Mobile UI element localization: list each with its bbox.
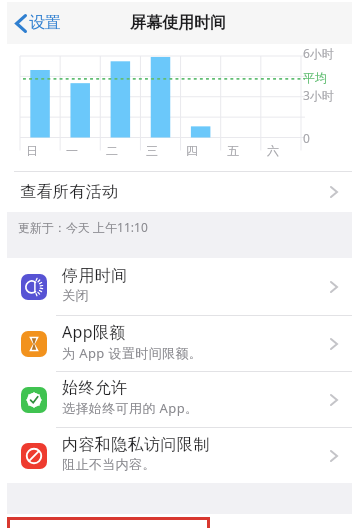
staticText: 0 bbox=[303, 130, 310, 146]
staticText: 3小时 bbox=[303, 87, 334, 103]
staticText: 一 bbox=[66, 143, 78, 158]
button[interactable]: Content Restrictions bbox=[7, 428, 352, 483]
staticText: 日 bbox=[26, 143, 38, 158]
staticText: 二 bbox=[106, 143, 118, 158]
staticText: App限额 bbox=[62, 321, 126, 343]
staticText: 查看所有活动 bbox=[20, 182, 119, 202]
button[interactable]: App Limits bbox=[7, 316, 352, 371]
button[interactable]: Downtime bbox=[7, 258, 352, 315]
other: Content Restrictions bbox=[21, 443, 47, 469]
staticText: 停用时间 bbox=[62, 266, 128, 286]
staticText: 关闭 bbox=[62, 287, 89, 303]
button[interactable]: Always Allowed bbox=[7, 372, 352, 427]
staticText: 五 bbox=[227, 143, 239, 158]
other: Always Allowed bbox=[21, 387, 47, 413]
staticText: 三 bbox=[146, 143, 158, 158]
staticText: 6小时 bbox=[303, 45, 334, 61]
staticText: 为 App 设置时间限额。 bbox=[62, 344, 203, 362]
other: App Limits bbox=[21, 331, 47, 357]
other: Downtime bbox=[21, 274, 47, 300]
staticText: 平均 bbox=[303, 70, 327, 85]
staticText: 更新于：今天 上午11:10 bbox=[18, 219, 148, 235]
staticText: 选择始终可用的 App。 bbox=[62, 399, 199, 417]
staticText: 设置 bbox=[29, 13, 61, 33]
button[interactable]: 设置 bbox=[7, 5, 71, 41]
staticText: 四 bbox=[186, 143, 198, 158]
staticText: 内容和隐私访问限制 bbox=[62, 435, 210, 455]
staticText: 阻止不当内容。 bbox=[62, 456, 156, 472]
staticText: 屏幕使用时间 bbox=[130, 13, 226, 33]
staticText: 六 bbox=[267, 143, 279, 158]
button[interactable]: 查看所有活动 bbox=[7, 172, 352, 212]
staticText: 始终允许 bbox=[62, 378, 128, 398]
